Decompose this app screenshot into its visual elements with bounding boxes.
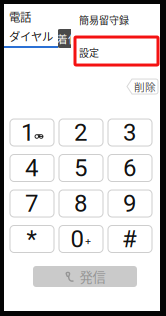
button[interactable]: 7: [10, 189, 54, 217]
button[interactable]: 2: [59, 118, 103, 146]
button[interactable]: 9: [108, 189, 152, 217]
staticText: 4: [25, 154, 38, 182]
staticText: 2: [74, 118, 87, 146]
staticText: 6: [123, 154, 136, 182]
staticText: +: [84, 234, 91, 247]
button[interactable]: 4: [10, 154, 54, 182]
button[interactable]: 8: [59, 189, 103, 217]
staticText: 電話: [9, 8, 31, 25]
staticText: *: [26, 225, 36, 253]
button[interactable]: ダイヤル: [4, 27, 58, 48]
button[interactable]: #: [108, 225, 152, 253]
staticText: #: [122, 225, 137, 253]
staticText: 削除: [134, 79, 156, 94]
staticText: 9: [123, 189, 136, 217]
staticText: ダイヤル: [9, 28, 53, 44]
button[interactable]: 着信: [57, 29, 79, 48]
button[interactable]: 簡易留守録: [71, 4, 160, 36]
staticText: 7: [25, 189, 38, 217]
button[interactable]: 発信: [33, 266, 137, 287]
button[interactable]: 5: [59, 154, 103, 182]
staticText: 簡易留守録: [79, 13, 129, 27]
button[interactable]: 削除: [126, 78, 158, 95]
staticText: 1: [21, 118, 34, 146]
button[interactable]: 6: [108, 154, 152, 182]
staticText: 3: [123, 118, 136, 146]
staticText: 着信: [57, 31, 79, 46]
button[interactable]: 3: [108, 118, 152, 146]
staticText: 5: [74, 154, 87, 182]
button[interactable]: 0: [59, 225, 103, 253]
staticText: 発信: [79, 267, 105, 286]
staticText: 0: [70, 225, 83, 253]
button[interactable]: 設定: [71, 36, 160, 69]
button[interactable]: *: [10, 225, 54, 253]
staticText: 8: [74, 189, 87, 217]
staticText: 設定: [79, 45, 99, 60]
button[interactable]: 1: [10, 118, 54, 146]
